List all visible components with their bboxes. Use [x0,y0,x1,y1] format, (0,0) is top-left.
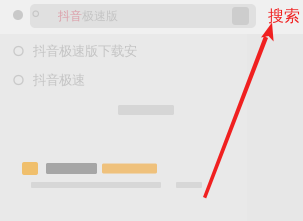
button[interactable] [0,162,250,188]
button[interactable]: 抖音极速 [0,73,250,87]
button[interactable]: 抖音 [30,4,256,28]
staticText: 抖音 [58,9,82,23]
staticText: 抖音极速版下载安 [33,43,137,59]
staticText: 极速版 [82,9,118,23]
button[interactable]: Back [13,10,23,20]
staticText: 抖音极速 [33,72,85,88]
staticText: 搜索 [268,6,300,26]
button[interactable]: 抖音极速版下载安 [0,44,250,58]
